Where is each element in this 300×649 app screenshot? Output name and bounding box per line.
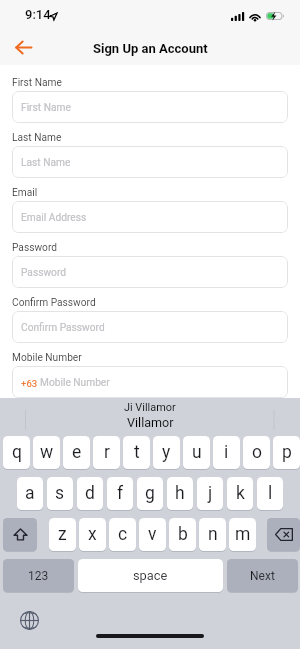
staticText: m bbox=[235, 524, 251, 545]
button[interactable]: Confirm Password bbox=[12, 311, 288, 343]
staticText: t bbox=[134, 442, 140, 463]
staticText: +63 bbox=[21, 378, 38, 389]
staticText: Confirm Password bbox=[12, 297, 96, 309]
button[interactable]: u bbox=[183, 436, 210, 470]
staticText: v bbox=[148, 524, 157, 545]
staticText: p bbox=[282, 442, 292, 463]
staticText: e bbox=[72, 442, 82, 463]
button[interactable]: h bbox=[167, 477, 193, 511]
button[interactable]: +63 bbox=[12, 366, 288, 398]
staticText: Last Name bbox=[12, 132, 62, 144]
button[interactable]: z bbox=[49, 518, 76, 552]
staticText: o bbox=[252, 442, 262, 463]
staticText: Villamor bbox=[127, 415, 174, 430]
staticText: 123 bbox=[28, 569, 49, 583]
staticText: l bbox=[268, 483, 273, 504]
button[interactable]: n bbox=[199, 518, 226, 552]
staticText: f bbox=[117, 483, 124, 504]
staticText: First Name bbox=[12, 77, 62, 89]
button[interactable]: e bbox=[63, 436, 90, 470]
staticText: k bbox=[236, 483, 245, 504]
staticText: j bbox=[208, 483, 213, 504]
staticText: b bbox=[178, 524, 188, 545]
staticText: r bbox=[104, 442, 110, 463]
button[interactable]: Email Address bbox=[12, 201, 288, 233]
button[interactable]: s bbox=[47, 477, 73, 511]
staticText: space bbox=[133, 568, 168, 583]
staticText: y bbox=[162, 442, 171, 463]
staticText: Email bbox=[12, 187, 38, 199]
staticText: w bbox=[40, 442, 54, 463]
button[interactable]: f bbox=[107, 477, 133, 511]
button[interactable]: Password bbox=[12, 256, 288, 288]
button[interactable]: Last Name bbox=[12, 146, 288, 178]
staticText: Email Address bbox=[21, 212, 87, 224]
staticText: Sign Up an Account bbox=[93, 41, 208, 56]
button[interactable]: 123 bbox=[3, 559, 74, 593]
staticText: Password bbox=[12, 242, 57, 254]
button[interactable]: y bbox=[153, 436, 180, 470]
button[interactable]: First Name bbox=[12, 91, 288, 123]
staticText: Next bbox=[250, 569, 275, 583]
staticText: First Name bbox=[21, 102, 71, 114]
button[interactable]: b bbox=[169, 518, 196, 552]
button[interactable]: x bbox=[79, 518, 106, 552]
staticText: s bbox=[55, 483, 65, 504]
staticText: q bbox=[12, 442, 22, 463]
staticText: d bbox=[85, 483, 95, 504]
button[interactable]: r bbox=[93, 436, 120, 470]
button[interactable]: Change keyboard language bbox=[16, 607, 43, 634]
staticText: z bbox=[58, 524, 67, 545]
staticText: Password bbox=[21, 267, 66, 279]
button[interactable]: m bbox=[229, 518, 256, 552]
button[interactable]: Shift bbox=[3, 518, 37, 552]
button[interactable]: d bbox=[77, 477, 103, 511]
button[interactable]: Back bbox=[10, 34, 36, 60]
button[interactable]: Next bbox=[227, 559, 298, 593]
button[interactable]: w bbox=[33, 436, 60, 470]
staticText: u bbox=[192, 442, 202, 463]
staticText: x bbox=[88, 524, 97, 545]
button[interactable]: i bbox=[213, 436, 240, 470]
staticText: c bbox=[118, 524, 128, 545]
button[interactable]: q bbox=[3, 436, 30, 470]
staticText: Mobile Number bbox=[12, 352, 82, 364]
staticText: h bbox=[175, 483, 185, 504]
button[interactable]: space bbox=[78, 559, 223, 593]
staticText: 9:14 bbox=[25, 7, 51, 22]
button[interactable]: p bbox=[273, 436, 300, 470]
staticText: Last Name bbox=[21, 157, 71, 169]
button[interactable]: o bbox=[243, 436, 270, 470]
staticText: i bbox=[224, 442, 229, 463]
staticText: a bbox=[25, 483, 35, 504]
button[interactable]: Delete bbox=[267, 518, 300, 552]
staticText: Confirm Password bbox=[21, 322, 105, 334]
staticText: n bbox=[208, 524, 218, 545]
button[interactable]: t bbox=[123, 436, 150, 470]
staticText: Mobile Number bbox=[40, 377, 110, 389]
button[interactable]: a bbox=[17, 477, 43, 511]
button[interactable]: j bbox=[197, 477, 223, 511]
button[interactable]: c bbox=[109, 518, 136, 552]
button[interactable]: g bbox=[137, 477, 163, 511]
staticText: g bbox=[145, 483, 155, 504]
staticText: Ji Villamor bbox=[124, 401, 176, 414]
button[interactable]: v bbox=[139, 518, 166, 552]
button[interactable]: l bbox=[257, 477, 283, 511]
button[interactable]: k bbox=[227, 477, 253, 511]
